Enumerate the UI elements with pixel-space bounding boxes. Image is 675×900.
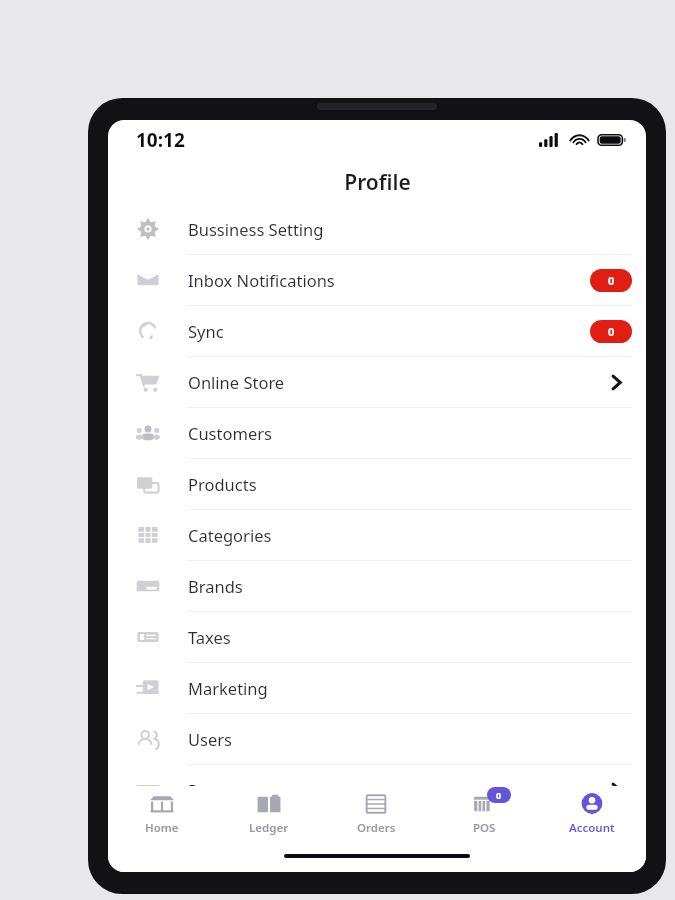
staticText: Customers	[188, 422, 624, 444]
staticText: 0	[608, 324, 615, 339]
staticText: Brands	[188, 575, 624, 597]
staticText: Taxes	[188, 626, 624, 648]
button[interactable]: Bussiness Setting	[108, 204, 646, 255]
button[interactable]: Account	[538, 786, 646, 840]
staticText: 10:12	[136, 127, 185, 153]
staticText: Bussiness Setting	[188, 218, 624, 240]
staticText: Account	[569, 820, 615, 836]
button[interactable]: Taxes	[108, 612, 646, 663]
button[interactable]: Brands	[108, 561, 646, 612]
staticText: Ledger	[249, 820, 289, 836]
staticText: 0	[608, 273, 615, 288]
button[interactable]: Inbox Notifications	[108, 255, 646, 306]
button[interactable]: Categories	[108, 510, 646, 561]
staticText: Home	[145, 820, 179, 836]
staticText: Users	[188, 728, 624, 750]
staticText: Orders	[357, 820, 396, 836]
staticText: Online Store	[188, 371, 608, 393]
button[interactable]: Products	[108, 459, 646, 510]
button[interactable]: Users	[108, 714, 646, 765]
staticText: Payments	[188, 779, 608, 801]
button[interactable]: Ledger	[215, 786, 322, 840]
staticText: Profile	[344, 168, 411, 197]
staticText: Products	[188, 473, 624, 495]
staticText: 0	[496, 789, 502, 801]
button[interactable]: Payments	[108, 765, 646, 816]
staticText: Sync	[188, 320, 590, 342]
staticText: Marketing	[188, 677, 624, 699]
staticText: Categories	[188, 524, 624, 546]
button[interactable]: Customers	[108, 408, 646, 459]
button[interactable]: Online Store	[108, 357, 646, 408]
staticText: Inbox Notifications	[188, 269, 590, 291]
button[interactable]: Home	[108, 786, 215, 840]
button[interactable]: Orders	[322, 786, 430, 840]
button[interactable]: 0	[430, 786, 538, 840]
button[interactable]: Sync	[108, 306, 646, 357]
staticText: POS	[473, 820, 496, 836]
button[interactable]: Marketing	[108, 663, 646, 714]
